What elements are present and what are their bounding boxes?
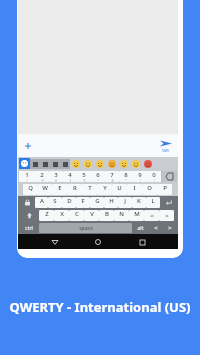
button[interactable]: 1 (19, 171, 34, 182)
button[interactable]: H (104, 197, 118, 208)
button[interactable]: 5 (77, 171, 91, 182)
button[interactable]: Q (23, 184, 37, 195)
button[interactable]: J (118, 197, 132, 208)
button[interactable]: Add attachment (22, 140, 34, 152)
staticText: ¹⁄ (26, 179, 28, 182)
button[interactable]: U (112, 184, 127, 195)
button[interactable]: 4 (63, 171, 77, 182)
button[interactable]: Tool 3 (50, 159, 60, 169)
button[interactable]: Send SMS (160, 139, 172, 153)
staticText: · (119, 192, 120, 195)
button[interactable]: Recent apps (135, 235, 149, 249)
button[interactable]: M (129, 210, 144, 221)
staticText: D (67, 197, 72, 205)
button[interactable]: Home (91, 235, 105, 249)
button[interactable]: alt (132, 223, 149, 233)
staticText: · (149, 192, 150, 195)
button[interactable]: Emoji face (131, 159, 141, 169)
staticText: · (45, 192, 46, 195)
staticText: I (133, 184, 136, 192)
staticText: · (134, 192, 135, 195)
staticText: C (75, 210, 79, 218)
button[interactable]: Emoji face (119, 159, 129, 169)
button[interactable]: Emoji (19, 158, 30, 169)
button[interactable]: 6 (91, 171, 105, 182)
button[interactable]: O (142, 184, 157, 195)
staticText: K (137, 197, 141, 205)
staticText: U (117, 184, 122, 192)
staticText: · (92, 218, 93, 221)
button[interactable]: Shift (19, 210, 39, 221)
button[interactable]: Tool 2 (40, 159, 50, 169)
staticText: 9 (138, 171, 142, 179)
button[interactable]: D (62, 197, 76, 208)
button[interactable]: B (99, 210, 114, 221)
button[interactable]: P (157, 184, 172, 195)
button[interactable]: S (48, 197, 62, 208)
staticText: SMS (162, 148, 170, 153)
button[interactable]: Tool 4 (60, 159, 70, 169)
button[interactable]: Emoji face (95, 159, 105, 169)
staticText: · (90, 192, 91, 195)
button[interactable]: Caps lock (19, 197, 35, 208)
button[interactable]: Z (39, 210, 54, 221)
button[interactable]: 7 (105, 171, 119, 182)
staticText: P (163, 184, 167, 192)
button[interactable]: Emoji face (143, 159, 153, 169)
button[interactable]: X (54, 210, 69, 221)
button[interactable]: Enter (160, 197, 177, 208)
button[interactable]: N (114, 210, 129, 221)
button[interactable]: V (84, 210, 99, 221)
button[interactable]: K (132, 197, 146, 208)
button[interactable]: Backspace (161, 171, 177, 182)
button[interactable]: C (69, 210, 84, 221)
button[interactable]: W (37, 184, 52, 195)
staticText: W (42, 184, 48, 192)
staticText: M (134, 210, 140, 218)
staticText: · (97, 205, 98, 208)
button[interactable]: Tool 1 (30, 159, 40, 169)
button[interactable]: Back (48, 235, 62, 249)
button[interactable]: T (82, 184, 97, 195)
staticText: · (139, 205, 140, 208)
staticText: 0 (152, 171, 156, 179)
button[interactable]: Emoji face (107, 159, 117, 169)
staticText: · (55, 205, 56, 208)
staticText: 4 (68, 171, 72, 179)
button[interactable]: 9 (133, 171, 147, 182)
button[interactable]: F (76, 197, 90, 208)
button[interactable]: > (163, 223, 177, 233)
button[interactable]: R (67, 184, 82, 195)
staticText: · (111, 205, 112, 208)
staticText: Q (28, 184, 33, 192)
button[interactable]: < (149, 223, 163, 233)
staticText: % (83, 179, 86, 182)
button[interactable]: A (35, 197, 48, 208)
button[interactable]: < (144, 210, 159, 221)
staticText: · (30, 192, 31, 195)
button[interactable]: 2 (34, 171, 49, 182)
button[interactable]: ctrl (19, 223, 39, 233)
button[interactable]: L (146, 197, 160, 208)
staticText: · (60, 192, 61, 195)
button[interactable]: space (39, 223, 132, 233)
button[interactable]: 0 (147, 171, 161, 182)
button[interactable]: 8 (119, 171, 133, 182)
button[interactable]: E (52, 184, 67, 195)
button[interactable]: > (159, 210, 174, 221)
staticText: 8 (124, 171, 128, 179)
staticText: 3 (54, 171, 58, 179)
button[interactable]: Y (97, 184, 112, 195)
button[interactable]: G (90, 197, 104, 208)
button[interactable]: Emoji face (83, 159, 93, 169)
staticText: J (124, 197, 126, 205)
staticText: < (150, 212, 154, 220)
staticText: · (69, 205, 70, 208)
staticText: O (147, 184, 152, 192)
button[interactable]: Emoji face (71, 159, 81, 169)
button[interactable]: 3 (49, 171, 63, 182)
button[interactable]: I (127, 184, 142, 195)
staticText: & (111, 179, 114, 182)
